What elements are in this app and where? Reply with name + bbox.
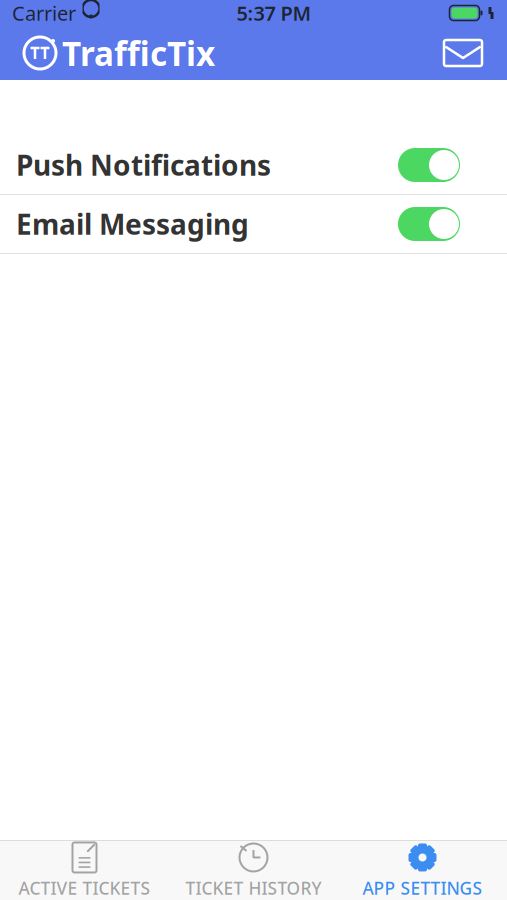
button[interactable]: APP SETTINGS	[338, 835, 507, 900]
staticText: APP SETTINGS	[362, 876, 482, 899]
staticText: ACTIVE TICKETS	[18, 876, 150, 899]
staticText: Carrier	[12, 0, 76, 26]
staticText: Email Messaging	[16, 205, 249, 243]
button[interactable]: ACTIVE TICKETS	[0, 835, 169, 900]
button[interactable]: Push Notifications	[0, 136, 507, 195]
staticText: Push Notifications	[16, 146, 271, 184]
button[interactable]: TICKET HISTORY	[169, 835, 338, 900]
staticText: TrafficTix	[62, 31, 215, 75]
button[interactable]: Messages	[435, 32, 491, 74]
staticText: 5:37 PM	[236, 0, 311, 26]
button[interactable]: Email Messaging	[0, 195, 507, 254]
staticText: TICKET HISTORY	[185, 876, 321, 899]
